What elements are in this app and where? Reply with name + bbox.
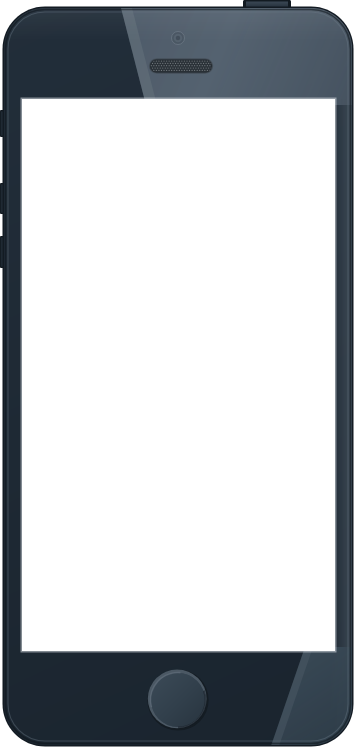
button[interactable]: Smartphone device illustration: [0, 0, 356, 753]
